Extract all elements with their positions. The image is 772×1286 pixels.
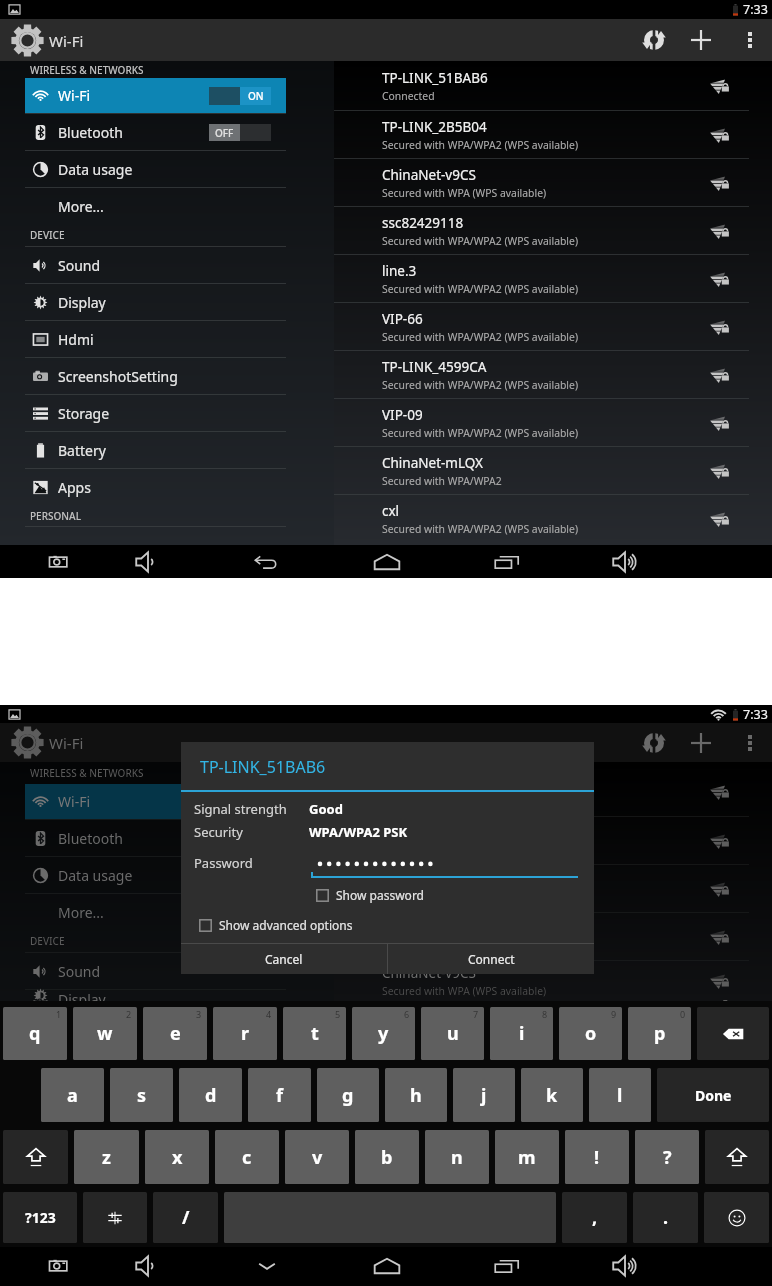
button[interactable]: Add network	[678, 723, 724, 762]
button[interactable]: Cancel	[181, 944, 387, 974]
button[interactable]: u	[421, 1007, 484, 1060]
button[interactable]: b	[355, 1130, 419, 1184]
staticText: ssc82429118	[382, 872, 464, 890]
button[interactable]: Data usage	[25, 151, 286, 187]
button[interactable]: Scan	[630, 723, 677, 762]
button[interactable]: Data usage	[25, 857, 286, 893]
button[interactable]: VIP-09	[334, 399, 772, 446]
button[interactable]: TP-LINK_2B5B04	[334, 817, 772, 864]
button[interactable]: ChinaNet-v9CS	[334, 159, 772, 206]
button[interactable]: vol+	[595, 1247, 655, 1285]
button[interactable]: ScreenshotSetting	[25, 358, 286, 394]
button[interactable]: j	[453, 1068, 515, 1122]
button[interactable]: Display	[25, 284, 286, 320]
button[interactable]: line.3	[334, 255, 772, 302]
button[interactable]: n	[425, 1130, 489, 1184]
button[interactable]: e	[143, 1007, 207, 1060]
button[interactable]: shift	[705, 1130, 769, 1184]
button[interactable]: TP-LINK_2B5B04	[334, 111, 772, 158]
button[interactable]: recent	[477, 545, 537, 578]
button[interactable]: Sound	[25, 247, 286, 283]
button[interactable]: Done	[657, 1068, 769, 1122]
button[interactable]: home	[357, 545, 417, 578]
button[interactable]: settings	[83, 1192, 147, 1243]
button[interactable]: emoji	[704, 1192, 769, 1243]
button[interactable]: g	[317, 1068, 379, 1122]
button[interactable]: c	[215, 1130, 279, 1184]
button[interactable]: Wi-Fi	[25, 784, 286, 819]
button[interactable]: ?	[635, 1130, 699, 1184]
button[interactable]: r	[213, 1007, 277, 1060]
button[interactable]: Wi-Fi	[25, 78, 286, 113]
button[interactable]: p	[628, 1007, 691, 1060]
button[interactable]: line.3	[334, 913, 772, 960]
button[interactable]: q	[3, 1007, 67, 1060]
button[interactable]: ssc82429118	[334, 865, 772, 912]
button[interactable]: More...	[25, 894, 286, 930]
button[interactable]: home	[357, 1247, 417, 1285]
button[interactable]: Sound	[25, 953, 286, 989]
button[interactable]: Apps	[25, 469, 286, 505]
button[interactable]: a	[41, 1068, 104, 1122]
button[interactable]: Storage	[25, 395, 286, 431]
button[interactable]: ?123	[3, 1192, 77, 1243]
staticText: k	[546, 1083, 558, 1108]
staticText: Secured with WPA/WPA2 (WPS available)	[382, 378, 579, 392]
button[interactable]: back	[237, 545, 297, 578]
button[interactable]: del	[697, 1007, 769, 1060]
button[interactable]: Bluetooth	[25, 114, 286, 150]
button[interactable]: .	[633, 1192, 698, 1243]
button[interactable]: Connect	[388, 944, 594, 974]
button[interactable]: w	[73, 1007, 137, 1060]
button[interactable]: More options	[727, 723, 772, 762]
button[interactable]: Display	[25, 990, 286, 1001]
staticText: Secured with WPA/WPA2 (WPS available)	[382, 234, 579, 248]
button[interactable]: cam	[29, 545, 89, 578]
button[interactable]: f	[248, 1068, 311, 1122]
button[interactable]: ChinaNet-v9CS	[334, 961, 772, 1001]
button[interactable]: down	[237, 1247, 297, 1285]
button[interactable]: Scan	[630, 19, 677, 61]
button[interactable]: ssc82429118	[334, 207, 772, 254]
button[interactable]: !	[565, 1130, 629, 1184]
button[interactable]: recent	[477, 1247, 537, 1285]
staticText: ScreenshotSetting	[58, 367, 178, 386]
button[interactable]: d	[179, 1068, 242, 1122]
staticText: c	[242, 1145, 252, 1170]
button[interactable]: Show advanced options	[199, 916, 353, 934]
button[interactable]: More...	[25, 188, 286, 224]
button[interactable]: TP-LINK_4599CA	[334, 351, 772, 398]
button[interactable]: ChinaNet-mLQX	[334, 447, 772, 494]
button[interactable]: Show password	[316, 886, 424, 904]
button[interactable]: VIP-66	[334, 303, 772, 350]
button[interactable]: Add network	[678, 19, 724, 61]
button[interactable]: TP-LINK_51BAB6	[334, 61, 772, 110]
button[interactable]: l	[589, 1068, 651, 1122]
button[interactable]: k	[521, 1068, 583, 1122]
button[interactable]: ,	[562, 1192, 627, 1243]
button[interactable]: m	[495, 1130, 559, 1184]
button[interactable]: i	[490, 1007, 553, 1060]
staticText: d	[205, 1083, 217, 1108]
button[interactable]: vol-	[118, 1247, 178, 1285]
button[interactable]: TP-LINK_51BAB6	[334, 767, 772, 816]
button[interactable]: x	[145, 1130, 209, 1184]
button[interactable]: o	[559, 1007, 622, 1060]
button[interactable]: z	[74, 1130, 139, 1184]
button[interactable]: h	[385, 1068, 447, 1122]
button[interactable]: vol-	[118, 545, 178, 578]
button[interactable]: /	[153, 1192, 218, 1243]
button[interactable]: shift	[3, 1130, 68, 1184]
button[interactable]: Hdmi	[25, 321, 286, 357]
button[interactable]: vol+	[595, 545, 655, 578]
button[interactable]: v	[285, 1130, 349, 1184]
button[interactable]: s	[110, 1068, 173, 1122]
button[interactable]: cxl	[334, 495, 772, 542]
button[interactable]: Battery	[25, 432, 286, 468]
button[interactable]: t	[283, 1007, 346, 1060]
button[interactable]: cam	[29, 1247, 89, 1285]
button[interactable]: Bluetooth	[25, 820, 286, 856]
button[interactable]: More options	[727, 19, 772, 61]
button[interactable]: y	[352, 1007, 415, 1060]
